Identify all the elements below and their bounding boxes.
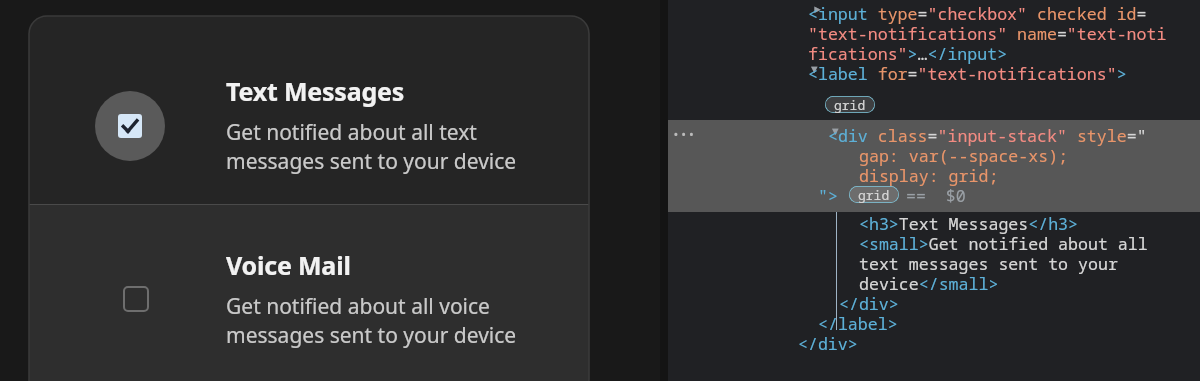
staticText: Text Messages — [226, 74, 405, 108]
staticText: Get notified about all voice — [226, 292, 490, 321]
staticText: Get notified about all text — [226, 118, 477, 147]
staticText: <label for="text-notifications"> — [808, 62, 1127, 85]
staticText: </div> — [798, 332, 858, 355]
staticText: grid — [834, 96, 866, 113]
other: Unchecked — [124, 287, 148, 311]
button[interactable]: Unchecked — [29, 205, 589, 381]
staticText: <h3>Text Messages</h3> — [859, 212, 1079, 235]
staticText: <input type="checkbox" checked id= — [808, 2, 1147, 25]
staticText: device</small> — [859, 272, 999, 295]
staticText: == $0 — [906, 184, 966, 207]
staticText: ▼ — [832, 123, 839, 138]
other: Checked — [118, 114, 142, 138]
staticText: <div class="input-stack" style=" — [828, 124, 1147, 147]
staticText: <small>Get notified about all — [859, 232, 1148, 255]
staticText: Voice Mail — [226, 248, 351, 282]
staticText: ▼ — [811, 61, 818, 76]
staticText: text messages sent to your — [859, 252, 1118, 275]
staticText: "text-notifications" name="text-noti — [808, 22, 1167, 45]
button[interactable]: Checked — [29, 16, 589, 204]
staticText: fications">…</input> — [808, 42, 1008, 65]
staticText: </div> — [839, 292, 899, 315]
staticText: ▶ — [811, 1, 825, 16]
staticText: "> — [818, 184, 838, 207]
staticText: messages sent to your device — [226, 147, 517, 176]
staticText: display: grid; — [859, 164, 999, 187]
staticText: </label> — [818, 312, 898, 335]
staticText: ••• — [672, 125, 696, 143]
staticText: messages sent to your device — [226, 321, 517, 350]
staticText: grid — [858, 186, 890, 203]
staticText: gap: var(--space-xs); — [859, 144, 1069, 167]
